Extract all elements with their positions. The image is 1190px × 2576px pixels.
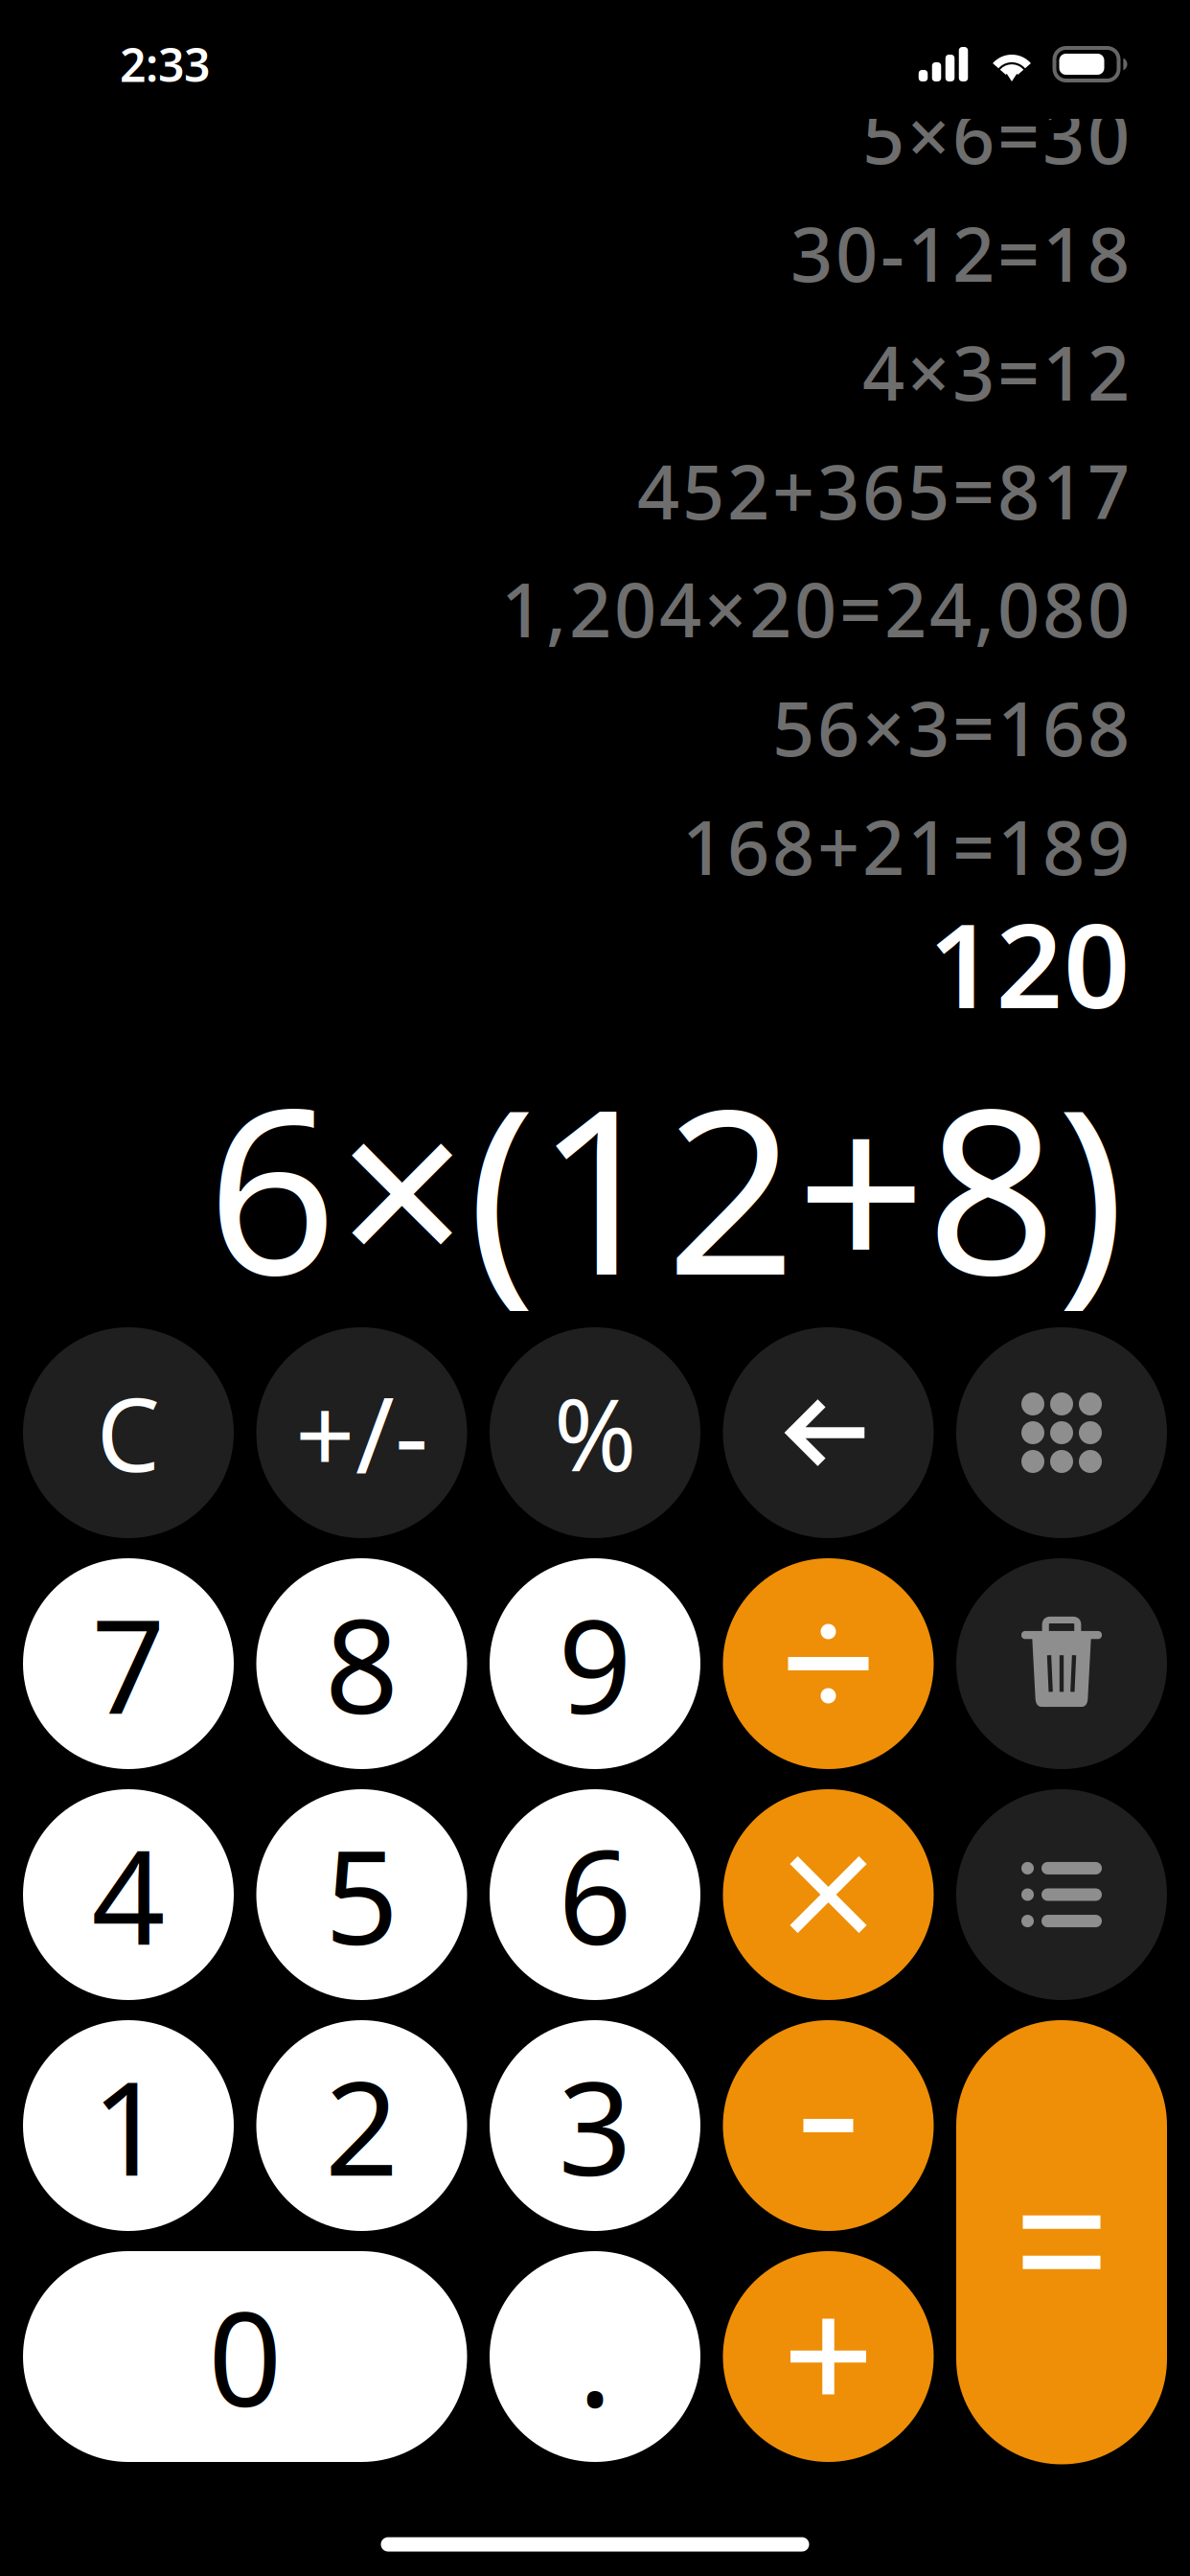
staticText: 2:33 (120, 34, 210, 95)
staticText: 120 (928, 886, 1130, 1040)
button[interactable]: 8 (256, 1558, 467, 1769)
staticText: 6 (558, 1809, 632, 1980)
button[interactable]: Keypad (956, 1327, 1167, 1538)
staticText: . (578, 2271, 612, 2442)
button[interactable]: 6 (490, 1789, 700, 2000)
button[interactable]: 2 (256, 2020, 467, 2231)
staticText: 1 (92, 2040, 165, 2211)
button[interactable]: 5 (256, 1789, 467, 2000)
staticText: 6×(12+8) (207, 1035, 1125, 1337)
staticText: 1,204×20=24,080 (501, 559, 1130, 658)
staticText: 0 (208, 2271, 282, 2442)
staticText: 3 (558, 2040, 632, 2211)
staticText: 7 (92, 1578, 165, 1749)
button[interactable]: +/- (256, 1327, 467, 1538)
button[interactable]: 7 (23, 1558, 234, 1769)
staticText: 2 (325, 2040, 399, 2211)
staticText: 8 (325, 1578, 399, 1749)
button[interactable]: C (23, 1327, 234, 1538)
button[interactable]: Plus (723, 2251, 934, 2462)
button[interactable]: 1 (23, 2020, 234, 2231)
button[interactable]: History (956, 1789, 1167, 2000)
button[interactable]: 3 (490, 2020, 700, 2231)
button[interactable]: Minus (723, 2020, 934, 2231)
button[interactable]: . (490, 2251, 700, 2462)
staticText: +/- (295, 1363, 428, 1502)
staticText: 30-12=18 (790, 204, 1130, 302)
button[interactable]: Backspace (723, 1327, 934, 1538)
button[interactable]: 0 (23, 2251, 467, 2462)
staticText: 452+365=817 (637, 442, 1130, 540)
button[interactable]: Multiply (723, 1789, 934, 2000)
button[interactable]: Clear history (956, 1558, 1167, 1769)
button[interactable]: % (490, 1327, 700, 1538)
button[interactable]: Divide (723, 1558, 934, 1769)
staticText: 4 (92, 1809, 165, 1980)
button[interactable]: 9 (490, 1558, 700, 1769)
staticText: 9 (558, 1578, 632, 1749)
staticText: 5×6=30 (862, 86, 1130, 184)
staticText: % (554, 1366, 636, 1499)
button[interactable]: Equals (956, 2020, 1167, 2464)
staticText: C (96, 1366, 160, 1500)
button[interactable]: 4 (23, 1789, 234, 2000)
staticText: 56×3=168 (772, 678, 1130, 777)
staticText: 5 (325, 1809, 399, 1980)
staticText: 4×3=12 (862, 323, 1130, 421)
staticText: 168+21=189 (682, 797, 1130, 895)
